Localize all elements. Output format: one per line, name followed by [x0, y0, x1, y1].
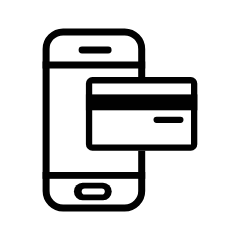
button[interactable]: Mobile payment - pay by card with your p… — [0, 0, 240, 240]
